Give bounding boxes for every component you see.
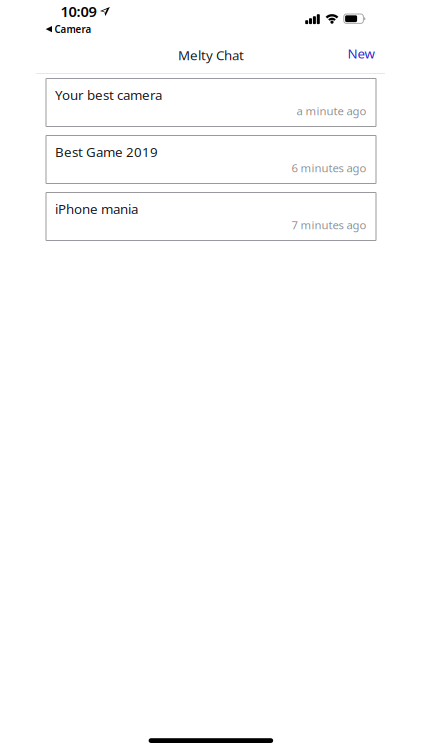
staticText: Best Game 2019 [55,143,158,161]
button[interactable]: iPhone mania [46,192,376,240]
staticText: Melty Chat [178,46,244,64]
staticText: New [347,44,374,62]
staticText: iPhone mania [55,200,138,218]
button[interactable]: Best Game 2019 [46,135,376,183]
button[interactable]: Your best camera [46,78,376,126]
button[interactable]: Camera [44,21,94,35]
staticText: a minute ago [296,103,366,118]
staticText: Camera [55,22,92,36]
button[interactable]: New [347,44,374,62]
staticText: 6 minutes ago [291,160,366,175]
staticText: Your best camera [55,86,162,104]
staticText: 7 minutes ago [291,217,366,232]
staticText: 10:09 [60,1,96,21]
